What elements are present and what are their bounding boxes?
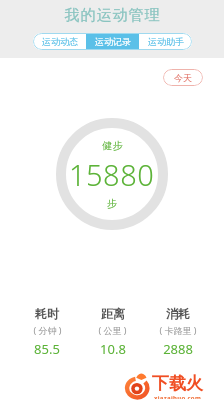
staticText: 我的运动管理 xyxy=(64,6,160,25)
staticText: 运动动态 xyxy=(42,36,78,47)
button[interactable]: 运动助手 xyxy=(139,33,192,50)
button[interactable]: 运动动态 xyxy=(33,33,86,50)
button[interactable]: 耗时 xyxy=(14,306,80,358)
staticText: 消耗 xyxy=(166,306,190,321)
button[interactable]: 健步 xyxy=(56,118,168,230)
staticText: 运动记录 xyxy=(95,36,131,47)
staticText: 10.8 xyxy=(100,340,126,358)
staticText: 步 xyxy=(107,197,117,210)
staticText: 15880 xyxy=(69,155,155,194)
staticText: 耗时 xyxy=(35,306,59,321)
staticText: 今天 xyxy=(174,72,192,83)
staticText: ( 卡路里 ) xyxy=(159,324,197,336)
staticText: 2888 xyxy=(163,340,193,358)
button[interactable]: 运动记录 xyxy=(86,33,139,50)
button[interactable]: 今天 xyxy=(163,69,203,86)
staticText: 85.5 xyxy=(34,340,60,358)
staticText: 距离 xyxy=(101,306,125,321)
staticText: 健步 xyxy=(102,139,123,152)
staticText: ( 公里 ) xyxy=(98,324,127,336)
button[interactable]: 消耗 xyxy=(145,306,210,358)
staticText: ( 分钟 ) xyxy=(33,324,62,336)
staticText: 下载火 xyxy=(152,373,203,394)
staticText: 运动助手 xyxy=(148,36,184,47)
staticText: xiazaihuo.com xyxy=(154,394,202,399)
button[interactable]: 距离 xyxy=(80,306,145,358)
